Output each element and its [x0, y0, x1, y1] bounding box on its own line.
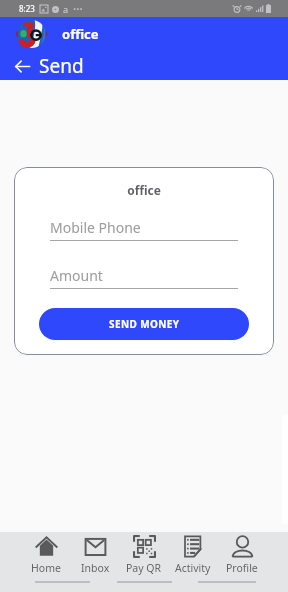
staticText: office — [62, 25, 99, 43]
staticText: ··· — [73, 1, 83, 17]
staticText: Pay QR — [126, 561, 162, 575]
staticText: Amount — [50, 266, 103, 285]
staticText: a — [63, 3, 69, 15]
staticText: Profile — [226, 561, 258, 575]
button[interactable]: Home — [26, 532, 66, 578]
button[interactable]: Inbox — [75, 532, 115, 578]
staticText: Inbox — [81, 561, 110, 575]
button[interactable]: SEND MONEY — [39, 308, 249, 340]
button[interactable]: Profile — [222, 532, 262, 578]
button[interactable]: Pay QR — [124, 532, 164, 578]
staticText: office — [14, 182, 274, 198]
staticText: Send — [39, 53, 84, 79]
staticText: SEND MONEY — [109, 317, 180, 331]
staticText: 8:23 — [19, 3, 35, 14]
button[interactable]: Activity — [173, 532, 213, 578]
staticText: Home — [31, 561, 61, 575]
staticText: Mobile Phone — [50, 218, 141, 237]
button[interactable]: Back — [11, 55, 33, 77]
staticText: Activity — [175, 561, 211, 575]
